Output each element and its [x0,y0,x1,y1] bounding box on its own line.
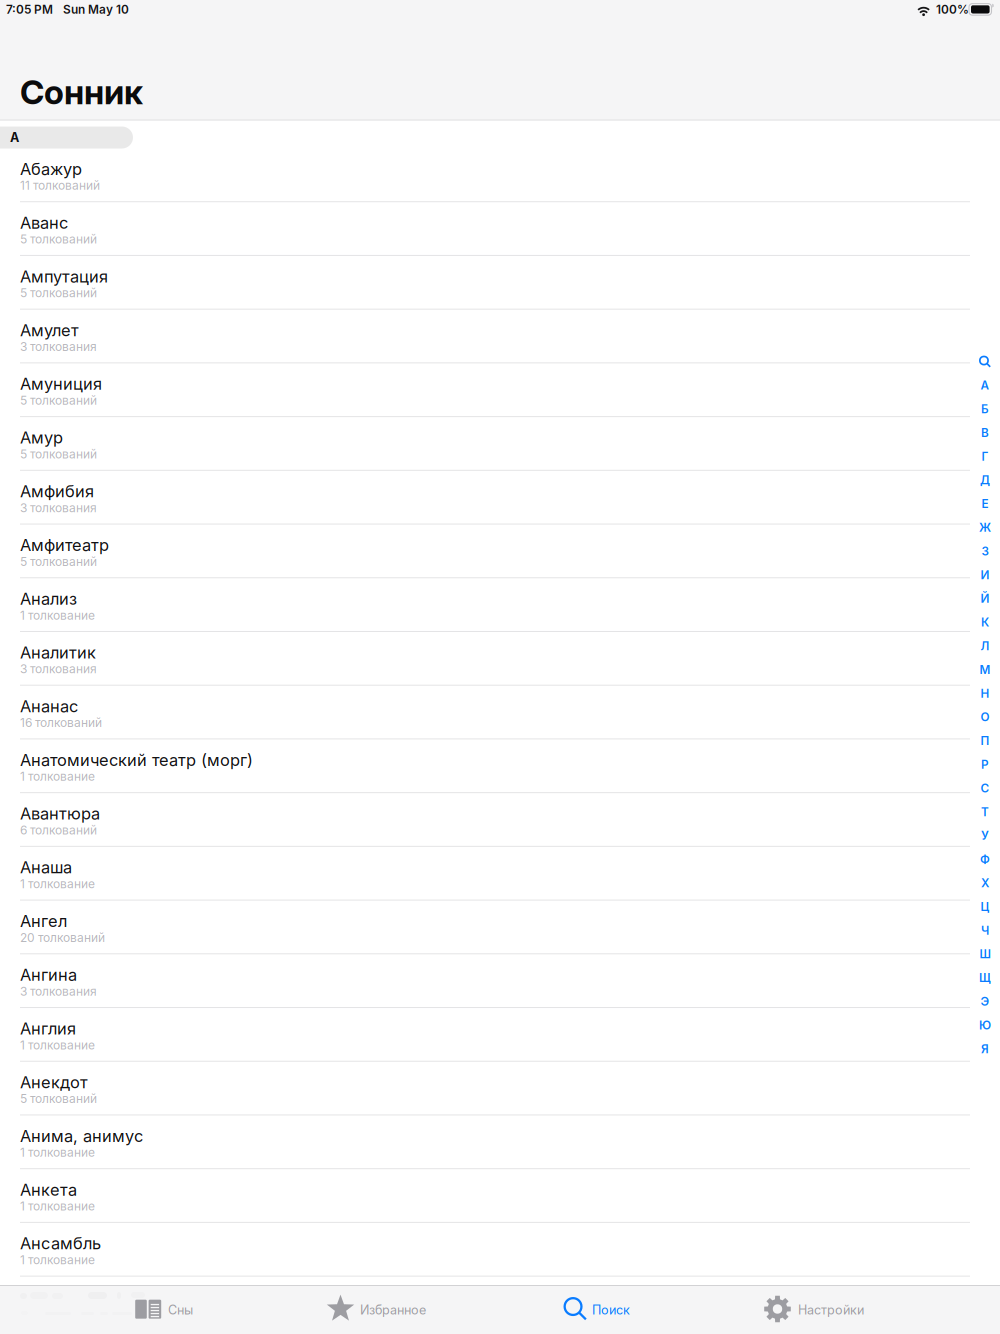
staticText: Анекдот [20,1072,88,1092]
button[interactable]: Э [970,990,1000,1013]
button[interactable]: Анаша [0,847,1000,901]
button[interactable]: О [970,705,1000,729]
staticText: Сны [168,1302,193,1318]
staticText: Р [981,757,989,772]
button[interactable]: З [970,539,1000,563]
staticText: Ангел [20,911,67,931]
button[interactable]: Анекдот [0,1062,1000,1115]
button[interactable]: Амфитеатр [0,524,1000,578]
staticText: Й [980,591,989,606]
button[interactable]: Х [970,871,1000,895]
staticText: Амуниция [20,374,102,394]
button[interactable]: Ж [970,516,1000,539]
button[interactable]: Щ [970,966,1000,990]
button[interactable]: Е [970,492,1000,516]
button[interactable]: Р [970,753,1000,776]
button[interactable]: Поиск [562,1286,702,1334]
button[interactable]: Ч [970,918,1000,942]
button[interactable]: Ампутация [0,256,1000,310]
staticText: 100% [936,2,969,17]
staticText: Я [981,1042,989,1056]
staticText: Авантюра [20,804,100,823]
button[interactable]: Я [970,1037,1000,1061]
button[interactable]: Англия [0,1008,1000,1062]
staticText: Сонник [20,72,143,112]
staticText: П [980,734,989,748]
staticText: Анализ [20,589,77,609]
button[interactable]: П [970,729,1000,753]
button[interactable]: Амфибия [0,471,1000,524]
button[interactable]: Ш [970,942,1000,966]
button[interactable]: Амулет [0,310,1000,363]
button[interactable]: С [970,776,1000,800]
staticText: Англия [20,1019,76,1038]
staticText: А [10,130,19,145]
button[interactable]: Ансамбль [0,1223,1000,1277]
button[interactable]: Анализ [0,578,1000,632]
staticText: Ч [981,923,989,937]
staticText: Анаша [20,857,72,877]
staticText: Ананас [20,696,78,716]
staticText: 5 толкований [20,447,97,461]
staticText: 5 толкований [20,1091,97,1106]
button[interactable]: Л [970,634,1000,658]
button[interactable]: В [970,421,1000,445]
staticText: А [980,378,989,392]
button[interactable]: Й [970,587,1000,610]
staticText: Ю [979,1018,991,1032]
staticText: Анкета [20,1180,77,1200]
staticText: Ансамбль [20,1233,101,1253]
staticText: 3 толкования [20,662,97,676]
staticText: Поиск [592,1302,630,1318]
staticText: Х [981,876,989,890]
button[interactable]: Избранное [327,1286,470,1334]
staticText: Т [981,805,989,819]
button[interactable]: Ю [970,1013,1000,1037]
button[interactable]: Г [970,445,1000,468]
button[interactable]: Н [970,681,1000,705]
button[interactable]: Д [970,468,1000,492]
button[interactable]: М [970,658,1000,681]
button[interactable]: Ананас [0,686,1000,739]
staticText: З [981,544,988,558]
button[interactable]: Аванс [0,202,1000,256]
button[interactable]: А [970,373,1000,397]
staticText: О [980,710,989,724]
staticText: Ж [979,520,991,535]
staticText: Амфитеатр [20,535,109,555]
staticText: Аванс [20,213,68,233]
button[interactable]: Т [970,800,1000,824]
button[interactable]: Аналитик [0,632,1000,686]
button[interactable]: К [970,610,1000,634]
staticText: 5 толкований [20,286,97,300]
staticText: Ф [980,852,990,866]
button[interactable]: Авантюра [0,793,1000,847]
staticText: 7:05 PM [6,2,53,17]
staticText: 3 толкования [20,501,97,515]
button[interactable]: Анима, анимус [0,1115,1000,1169]
staticText: 1 толкование [20,1253,95,1267]
staticText: 3 толкования [20,339,97,354]
button[interactable]: Сны [135,1286,278,1334]
staticText: И [980,568,989,582]
button[interactable]: Ангина [0,954,1000,1008]
button[interactable]: Анкета [0,1169,1000,1223]
staticText: Амфибия [20,481,94,501]
button[interactable]: Амуниция [0,363,1000,417]
button[interactable]: Абажур [0,148,1000,202]
staticText: Ц [980,900,989,914]
staticText: Д [980,473,990,487]
staticText: Настройки [798,1302,864,1318]
button[interactable]: Амур [0,417,1000,471]
button[interactable]: Поиск по алфавиту [970,350,1000,373]
button[interactable]: Ц [970,895,1000,919]
button[interactable]: Ангел [0,901,1000,954]
button[interactable]: Настройки [764,1286,908,1334]
staticText: Ш [979,947,990,961]
button[interactable]: И [970,563,1000,587]
button[interactable]: Анатомический театр (морг) [0,739,1000,793]
staticText: 1 толкование [20,608,95,622]
button[interactable]: Б [970,397,1000,421]
button[interactable]: У [970,824,1000,847]
button[interactable]: Ф [970,847,1000,871]
